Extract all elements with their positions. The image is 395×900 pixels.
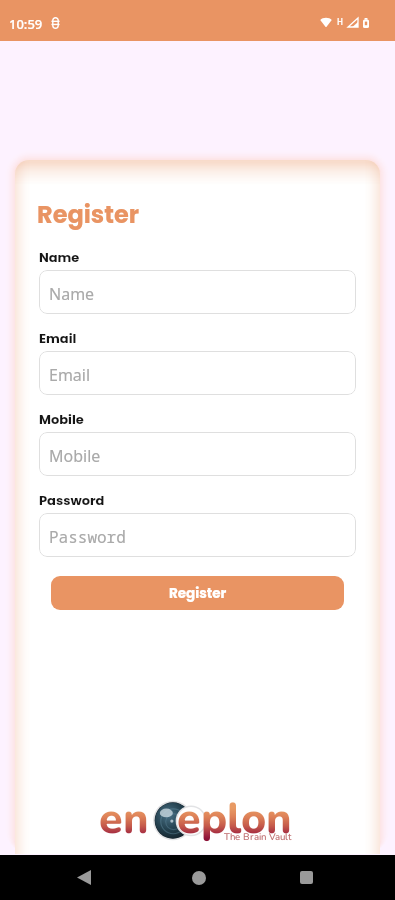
- button[interactable]: Name: [39, 270, 356, 314]
- staticText: 10:59: [9, 15, 43, 33]
- staticText: H: [337, 16, 343, 27]
- staticText: Register: [37, 198, 139, 232]
- button[interactable]: Home: [175, 855, 223, 900]
- staticText: Register: [169, 584, 227, 603]
- button[interactable]: Register: [51, 576, 344, 610]
- staticText: Name: [49, 283, 95, 305]
- button[interactable]: Recent apps: [282, 855, 330, 900]
- staticText: Email: [39, 329, 77, 347]
- button[interactable]: Mobile: [39, 432, 356, 476]
- button[interactable]: Password: [39, 513, 356, 557]
- button[interactable]: Email: [39, 351, 356, 395]
- staticText: Password: [49, 526, 126, 548]
- button[interactable]: Back: [60, 855, 108, 900]
- staticText: Mobile: [49, 445, 101, 467]
- staticText: Mobile: [39, 410, 84, 428]
- staticText: Email: [49, 364, 91, 386]
- staticText: Name: [39, 248, 80, 266]
- staticText: Password: [39, 491, 105, 509]
